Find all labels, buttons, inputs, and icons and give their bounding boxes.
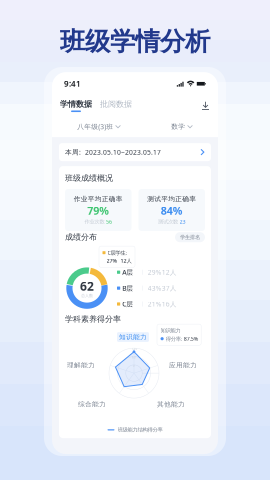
staticText: 其他能力 [157,400,185,408]
staticText: A层 [122,268,133,277]
staticText: 八年级(3)班 [77,122,113,131]
staticText: 批阅数据 [100,99,132,109]
staticText: 得分率: [166,335,182,342]
staticText: 21% [148,300,162,308]
staticText: 本周: 2023.05.10~2023.05.17 [65,148,161,157]
staticText: 87.5% [184,335,198,342]
staticText: 23 [179,218,185,225]
staticText: 学生排名 [180,234,200,240]
staticText: 79% [87,203,109,218]
staticText: 学科素养得分率 [65,314,121,324]
staticText: 班级成绩概况 [65,173,113,183]
staticText: 综合能力 [78,400,106,408]
button[interactable]: 批阅数据 [100,99,132,112]
button[interactable]: 下载 [201,101,210,110]
button[interactable]: 八年级(3)班 [77,122,121,131]
staticText: 应用能力 [169,361,197,369]
staticText: 班级能力结构得分率 [117,427,162,433]
staticText: 测试次数 [158,218,178,225]
staticText: 作业次数 [84,218,104,225]
staticText: 学情数据 [60,99,92,109]
staticText: 43% [148,284,162,293]
staticText: 120 [131,347,137,351]
staticText: 62 [80,278,94,294]
staticText: 知识能力 [160,327,180,334]
staticText: 60 [132,356,136,359]
staticText: 12人 [120,257,131,264]
staticText: 知识能力 [119,333,147,341]
staticText: 数学 [171,122,185,131]
staticText: C层 [122,300,133,308]
staticText: 作业平均正确率 [74,195,123,203]
staticText: 29% [148,268,162,277]
staticText: 56 [106,218,112,225]
button[interactable]: 本周: 2023.05.10~2023.05.17 [52,143,218,161]
staticText: 16人 [162,300,177,308]
staticText: 37人 [162,284,177,293]
staticText: 27% [106,257,117,264]
button[interactable]: 数学 [171,122,193,131]
staticText: 84% [161,203,183,218]
staticText: 9:41 [64,78,81,89]
staticText: C层学生: [107,249,126,256]
staticText: 总人数 [81,293,93,298]
staticText: 成绩分布 [65,232,97,242]
button[interactable]: 学生排名 [175,232,205,242]
staticText: 测试平均正确率 [147,195,196,203]
staticText: 理解能力 [67,361,95,369]
button[interactable]: 学情数据 [60,99,92,112]
staticText: 班级学情分析 [60,26,210,57]
staticText: B层 [122,284,133,293]
staticText: 12人 [162,268,177,277]
